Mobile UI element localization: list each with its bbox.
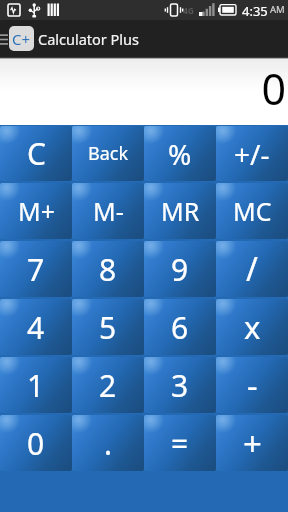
staticText: 0 bbox=[261, 59, 286, 118]
button[interactable]: % bbox=[144, 126, 216, 181]
staticText: x bbox=[244, 306, 261, 348]
button[interactable]: 8 bbox=[72, 241, 144, 297]
staticText: 8 bbox=[99, 249, 117, 290]
staticText: AM bbox=[270, 3, 285, 16]
button[interactable]: 6 bbox=[144, 299, 216, 355]
staticText: + bbox=[243, 421, 262, 466]
staticText: MR bbox=[161, 194, 200, 228]
staticText: = bbox=[171, 423, 189, 464]
staticText: 5 bbox=[99, 307, 117, 348]
button[interactable]: x bbox=[216, 299, 288, 355]
button[interactable]: Back bbox=[72, 126, 144, 181]
staticText: M- bbox=[93, 194, 124, 228]
button[interactable]: C bbox=[0, 126, 72, 181]
staticText: +/- bbox=[234, 135, 270, 173]
button[interactable]: 7 bbox=[0, 241, 72, 297]
button[interactable]: MR bbox=[144, 183, 216, 239]
button[interactable]: 5 bbox=[72, 299, 144, 355]
button[interactable]: / bbox=[216, 241, 288, 297]
staticText: 1 bbox=[27, 365, 45, 406]
staticText: C bbox=[27, 133, 46, 174]
button[interactable]: +/- bbox=[216, 126, 288, 181]
staticText: 3 bbox=[171, 365, 189, 406]
button[interactable]: = bbox=[144, 415, 216, 471]
staticText: MC bbox=[233, 194, 272, 228]
staticText: 4 bbox=[27, 307, 45, 348]
button[interactable]: - bbox=[216, 357, 288, 413]
button[interactable]: M- bbox=[72, 183, 144, 239]
staticText: . bbox=[104, 423, 113, 464]
button[interactable]: . bbox=[72, 415, 144, 471]
staticText: 7 bbox=[27, 249, 45, 290]
staticText: Back bbox=[88, 141, 129, 166]
staticText: 4:35 bbox=[242, 2, 268, 20]
staticText: / bbox=[246, 247, 258, 291]
staticText: Calculator Plus bbox=[38, 29, 140, 49]
button[interactable]: Navigate up bbox=[0, 20, 9, 57]
button[interactable]: M+ bbox=[0, 183, 72, 239]
button[interactable]: 4 bbox=[0, 299, 72, 355]
button[interactable]: 9 bbox=[144, 241, 216, 297]
button[interactable]: 1 bbox=[0, 357, 72, 413]
staticText: 9 bbox=[171, 249, 189, 290]
staticText: - bbox=[247, 363, 258, 408]
staticText: 6 bbox=[171, 307, 189, 348]
button[interactable]: + bbox=[216, 415, 288, 471]
button[interactable]: 0 bbox=[0, 415, 72, 471]
staticText: 0 bbox=[27, 423, 45, 464]
staticText: C+ bbox=[12, 29, 31, 49]
button[interactable]: MC bbox=[216, 183, 288, 239]
button[interactable]: 3 bbox=[144, 357, 216, 413]
staticText: 2 bbox=[99, 365, 117, 406]
staticText: M+ bbox=[18, 194, 55, 228]
staticText: % bbox=[168, 135, 192, 173]
staticText: 4G bbox=[183, 5, 195, 17]
button[interactable]: 2 bbox=[72, 357, 144, 413]
